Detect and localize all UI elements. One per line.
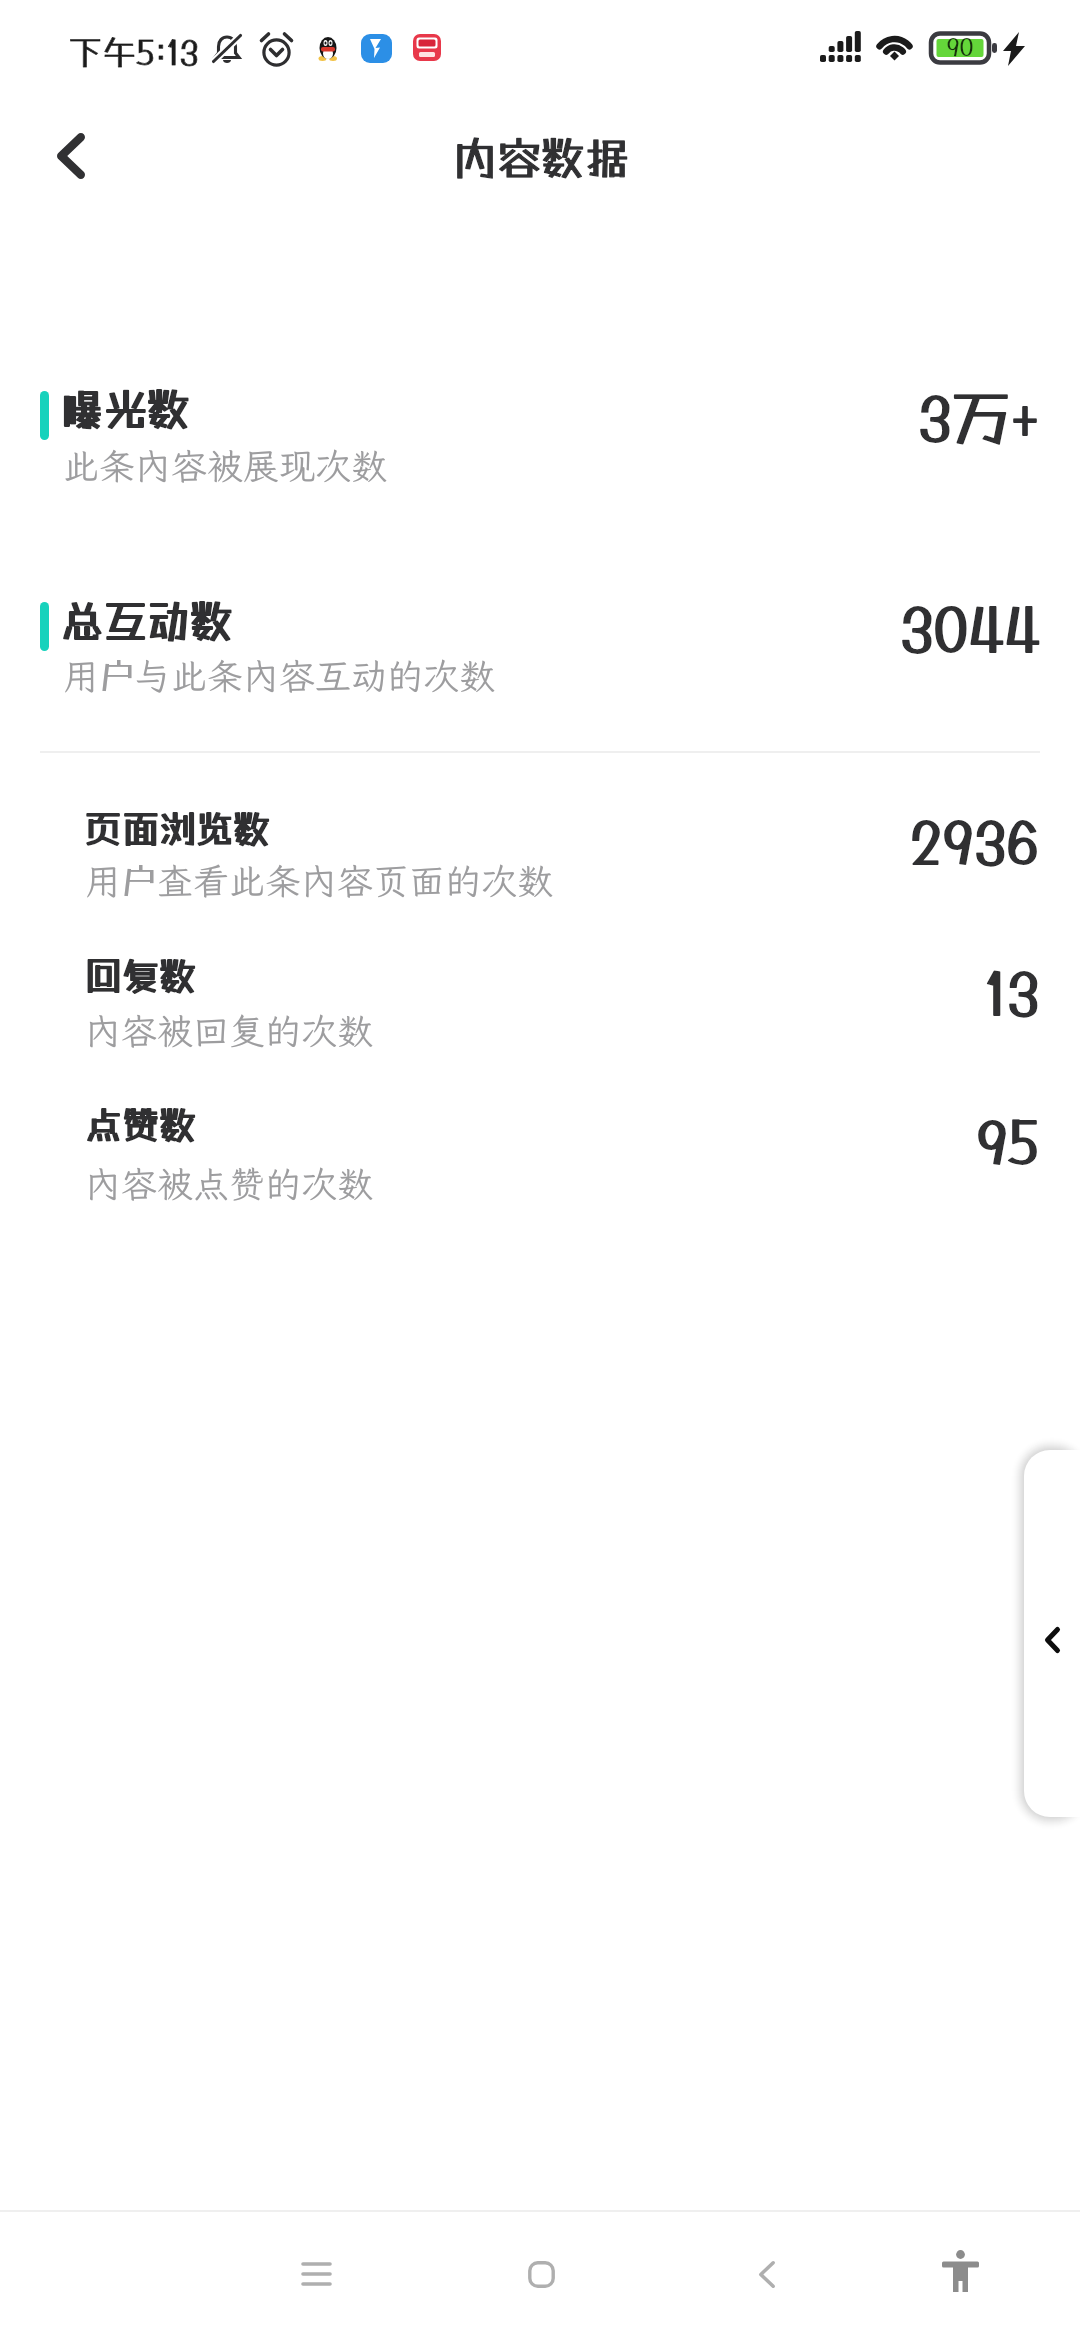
button[interactable]: Back xyxy=(711,2222,823,2326)
button[interactable]: Recents xyxy=(260,2222,372,2326)
button[interactable] xyxy=(0,1090,1080,1220)
button[interactable] xyxy=(0,378,1080,508)
button[interactable]: Back xyxy=(6,100,136,212)
button[interactable] xyxy=(0,589,1080,719)
button[interactable] xyxy=(0,940,1080,1070)
button[interactable]: Back xyxy=(1024,1450,1080,1817)
button[interactable]: Accessibility xyxy=(904,2218,1016,2322)
button[interactable] xyxy=(0,790,1080,920)
button[interactable]: Home xyxy=(485,2222,597,2326)
